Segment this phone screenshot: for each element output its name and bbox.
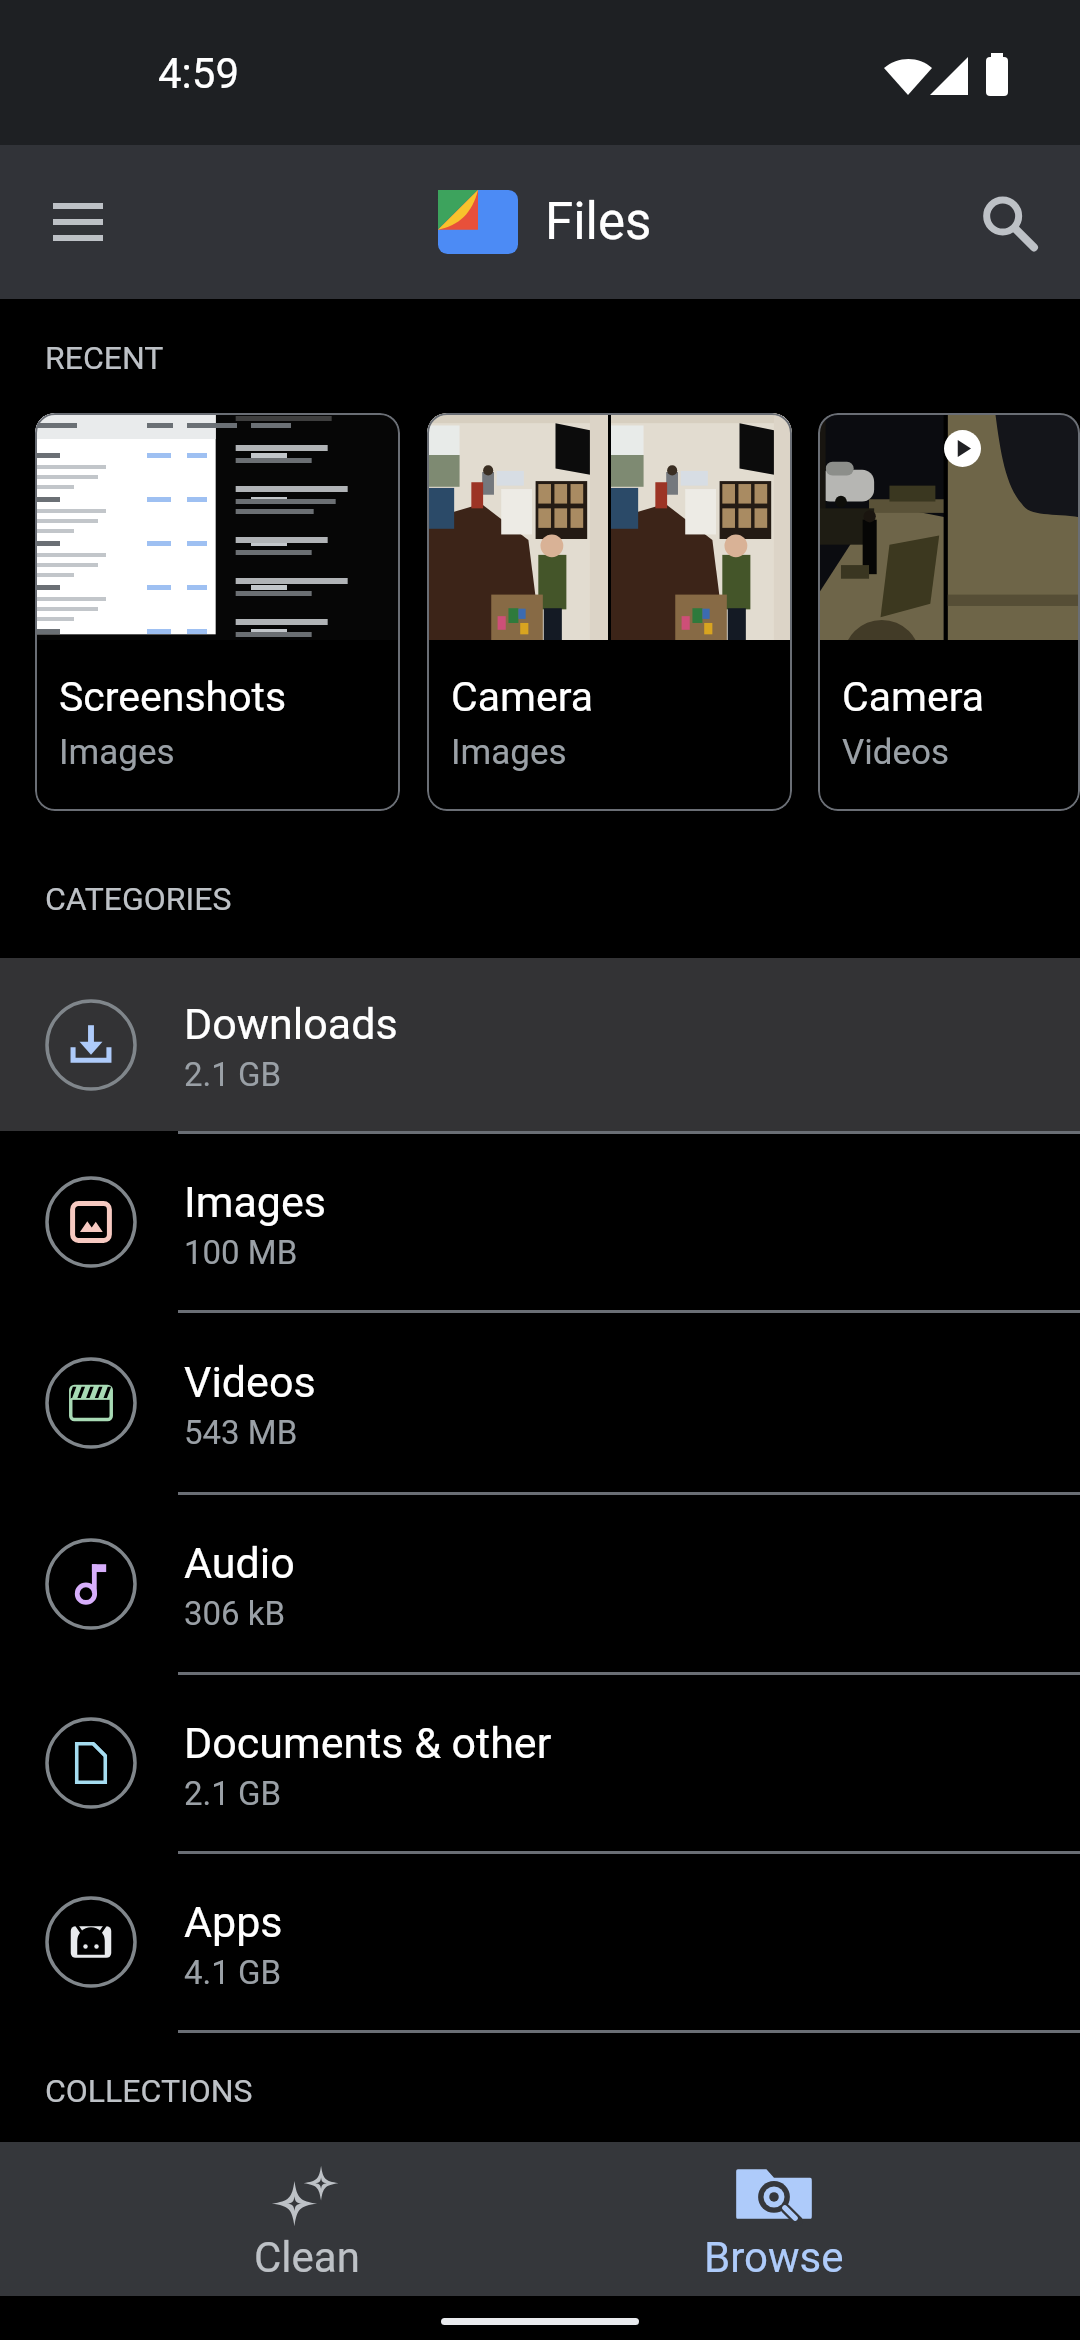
button[interactable]: Downloads (0, 958, 1080, 1131)
staticText: 2.1 GB (184, 1055, 282, 1094)
staticText: Camera (451, 673, 594, 721)
staticText: Apps (184, 1897, 283, 1947)
staticText: Screenshots (59, 673, 287, 721)
button[interactable]: Videos (0, 1313, 1080, 1492)
staticText: Camera (842, 673, 985, 721)
staticText: 306 kB (184, 1594, 286, 1633)
staticText: CATEGORIES (45, 880, 232, 918)
button[interactable]: Camera (818, 413, 1080, 811)
staticText: Browse (704, 2233, 844, 2282)
staticText: 4:59 (158, 49, 239, 98)
staticText: 2.1 GB (184, 1774, 282, 1813)
staticText: Clean (254, 2233, 360, 2282)
staticText: Audio (184, 1538, 295, 1588)
button[interactable]: Audio (0, 1495, 1080, 1672)
button[interactable]: Documents & other (0, 1675, 1080, 1851)
button[interactable]: Clean (73, 2142, 540, 2296)
button[interactable]: Search (950, 166, 1062, 278)
button[interactable]: Open navigation menu (22, 166, 134, 278)
button[interactable]: Screenshots (35, 413, 400, 811)
staticText: RECENT (45, 339, 164, 377)
button[interactable]: Apps (0, 1854, 1080, 2030)
staticText: Documents & other (184, 1718, 552, 1768)
staticText: Images (451, 732, 567, 773)
staticText: Videos (842, 732, 950, 773)
button[interactable]: Browse (540, 2142, 1007, 2296)
staticText: COLLECTIONS (45, 2072, 253, 2110)
staticText: Files (545, 192, 652, 252)
staticText: 543 MB (184, 1413, 298, 1452)
staticText: 100 MB (184, 1233, 298, 1272)
staticText: 4.1 GB (184, 1953, 282, 1992)
staticText: Videos (184, 1357, 316, 1407)
staticText: Downloads (184, 999, 398, 1049)
button[interactable]: Camera (427, 413, 792, 811)
staticText: Images (184, 1177, 326, 1227)
button[interactable]: Images (0, 1134, 1080, 1310)
staticText: Images (59, 732, 175, 773)
